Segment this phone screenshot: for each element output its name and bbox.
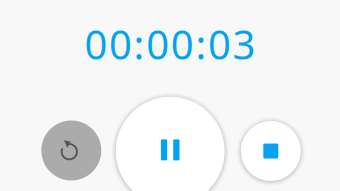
button[interactable]: Reset	[41, 120, 101, 180]
button[interactable]: Pause	[116, 97, 225, 191]
staticText: 00:00:03	[84, 17, 256, 70]
button[interactable]: Stop	[241, 121, 301, 181]
